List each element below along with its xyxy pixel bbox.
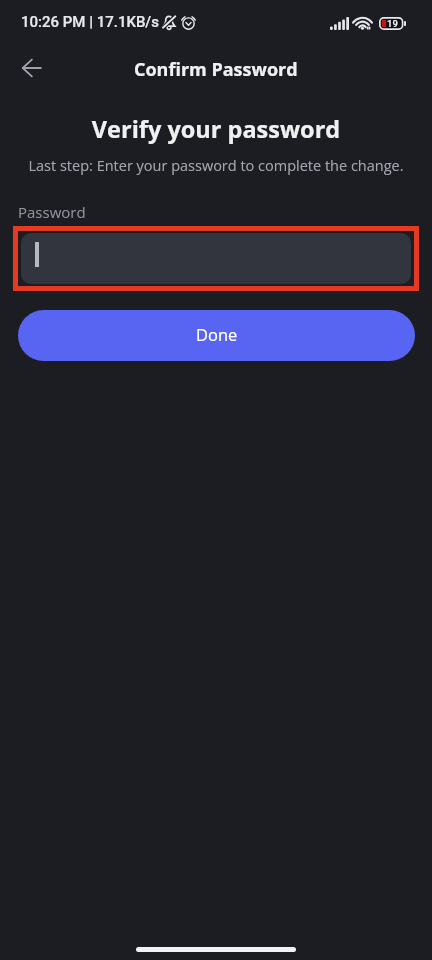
button[interactable]: Back	[10, 47, 52, 89]
staticText: Confirm Password	[134, 57, 298, 82]
staticText: Last step: Enter your password to comple…	[0, 156, 432, 176]
staticText: 10:26 PM | 17.1KB/s	[21, 13, 159, 31]
button[interactable]	[21, 233, 411, 284]
staticText: 19	[387, 18, 398, 29]
staticText: Verify your password	[0, 113, 432, 145]
staticText: Done	[196, 323, 238, 345]
button[interactable]: Done	[18, 310, 415, 361]
staticText: Password	[18, 202, 86, 222]
